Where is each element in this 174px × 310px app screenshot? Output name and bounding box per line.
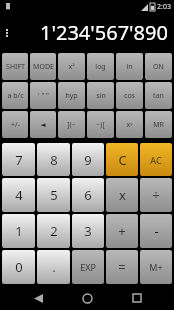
button[interactable]: tan <box>145 82 172 109</box>
button[interactable]: 7 <box>2 143 35 176</box>
button[interactable]: . <box>37 250 70 284</box>
button[interactable]: Home <box>75 286 99 310</box>
staticText: 2 <box>50 222 58 240</box>
staticText: ON <box>153 62 164 72</box>
staticText: EXP <box>80 261 96 273</box>
staticText: 9 <box>84 151 92 169</box>
button[interactable]: 5 <box>37 178 70 212</box>
button[interactable]: x <box>106 178 138 212</box>
button[interactable]: 3 <box>72 214 104 248</box>
button[interactable]: ON <box>145 53 172 80</box>
staticText: - <box>154 222 159 240</box>
button[interactable]: 2 <box>37 214 70 248</box>
button[interactable]: hyp <box>58 82 85 109</box>
staticText: ◄ <box>40 121 46 129</box>
staticText: C <box>118 151 127 169</box>
button[interactable]: + <box>106 214 138 248</box>
staticText: 0 <box>15 258 23 276</box>
button[interactable]: 8 <box>37 143 70 176</box>
button[interactable]: - <box>140 214 172 248</box>
button[interactable]: EXP <box>72 250 104 284</box>
staticText: 4 <box>15 186 23 204</box>
button[interactable]: 9 <box>72 143 104 176</box>
staticText: 7 <box>15 151 23 169</box>
staticText: 3 <box>84 222 92 240</box>
staticText: ÷ <box>152 186 160 204</box>
button[interactable]: MR <box>145 111 172 138</box>
button[interactable]: Recents <box>125 286 149 310</box>
button[interactable]: M+ <box>140 250 172 284</box>
button[interactable]: ÷ <box>140 178 172 212</box>
staticText: M+ <box>149 261 163 273</box>
staticText: +/- <box>11 120 20 130</box>
staticText: 1 <box>15 222 23 240</box>
staticText: . <box>52 258 56 276</box>
button[interactable]: 6 <box>72 178 104 212</box>
staticText: 8 <box>50 151 58 169</box>
button[interactable]: ◄ <box>30 111 56 138</box>
staticText: log <box>95 62 106 72</box>
button[interactable]: xʸ <box>116 111 143 138</box>
staticText: = <box>118 258 126 276</box>
button[interactable]: ](− <box>58 111 85 138</box>
staticText: AC <box>150 154 162 166</box>
button[interactable]: −)[ <box>87 111 114 138</box>
staticText: x² <box>68 62 75 72</box>
button[interactable]: log <box>87 53 114 80</box>
button[interactable]: = <box>106 250 138 284</box>
staticText: ' " " <box>38 91 49 101</box>
button[interactable]: cos <box>116 82 143 109</box>
button[interactable]: Back <box>26 286 50 310</box>
staticText: x <box>119 186 126 204</box>
staticText: 6 <box>84 186 92 204</box>
button[interactable]: AC <box>140 143 172 176</box>
staticText: tan <box>153 91 164 101</box>
staticText: ln <box>126 62 133 72</box>
staticText: + <box>118 222 126 240</box>
button[interactable]: sin <box>87 82 114 109</box>
staticText: a b/c <box>7 91 24 101</box>
button[interactable]: 0 <box>2 250 35 284</box>
button[interactable]: a b/c <box>2 82 28 109</box>
button[interactable]: C <box>106 143 138 176</box>
button[interactable]: +/- <box>2 111 28 138</box>
button[interactable]: ln <box>116 53 143 80</box>
button[interactable]: x² <box>58 53 85 80</box>
staticText: sin <box>96 91 106 101</box>
staticText: −)[ <box>96 120 105 130</box>
staticText: 2:03 <box>157 2 171 12</box>
staticText: 1'234'567'890 <box>40 19 168 46</box>
staticText: MODE <box>33 62 54 72</box>
button[interactable]: SHIFT <box>2 53 28 80</box>
staticText: cos <box>124 91 135 101</box>
staticText: ](− <box>67 120 76 130</box>
staticText: xʸ <box>126 120 133 130</box>
button[interactable]: MODE <box>30 53 56 80</box>
staticText: MR <box>153 120 164 130</box>
button[interactable]: More options <box>6 29 8 37</box>
staticText: 5 <box>50 186 58 204</box>
button[interactable]: 4 <box>2 178 35 212</box>
staticText: hyp <box>65 91 78 101</box>
button[interactable]: 1 <box>2 214 35 248</box>
staticText: SHIFT <box>6 62 25 72</box>
button[interactable]: ' " " <box>30 82 56 109</box>
